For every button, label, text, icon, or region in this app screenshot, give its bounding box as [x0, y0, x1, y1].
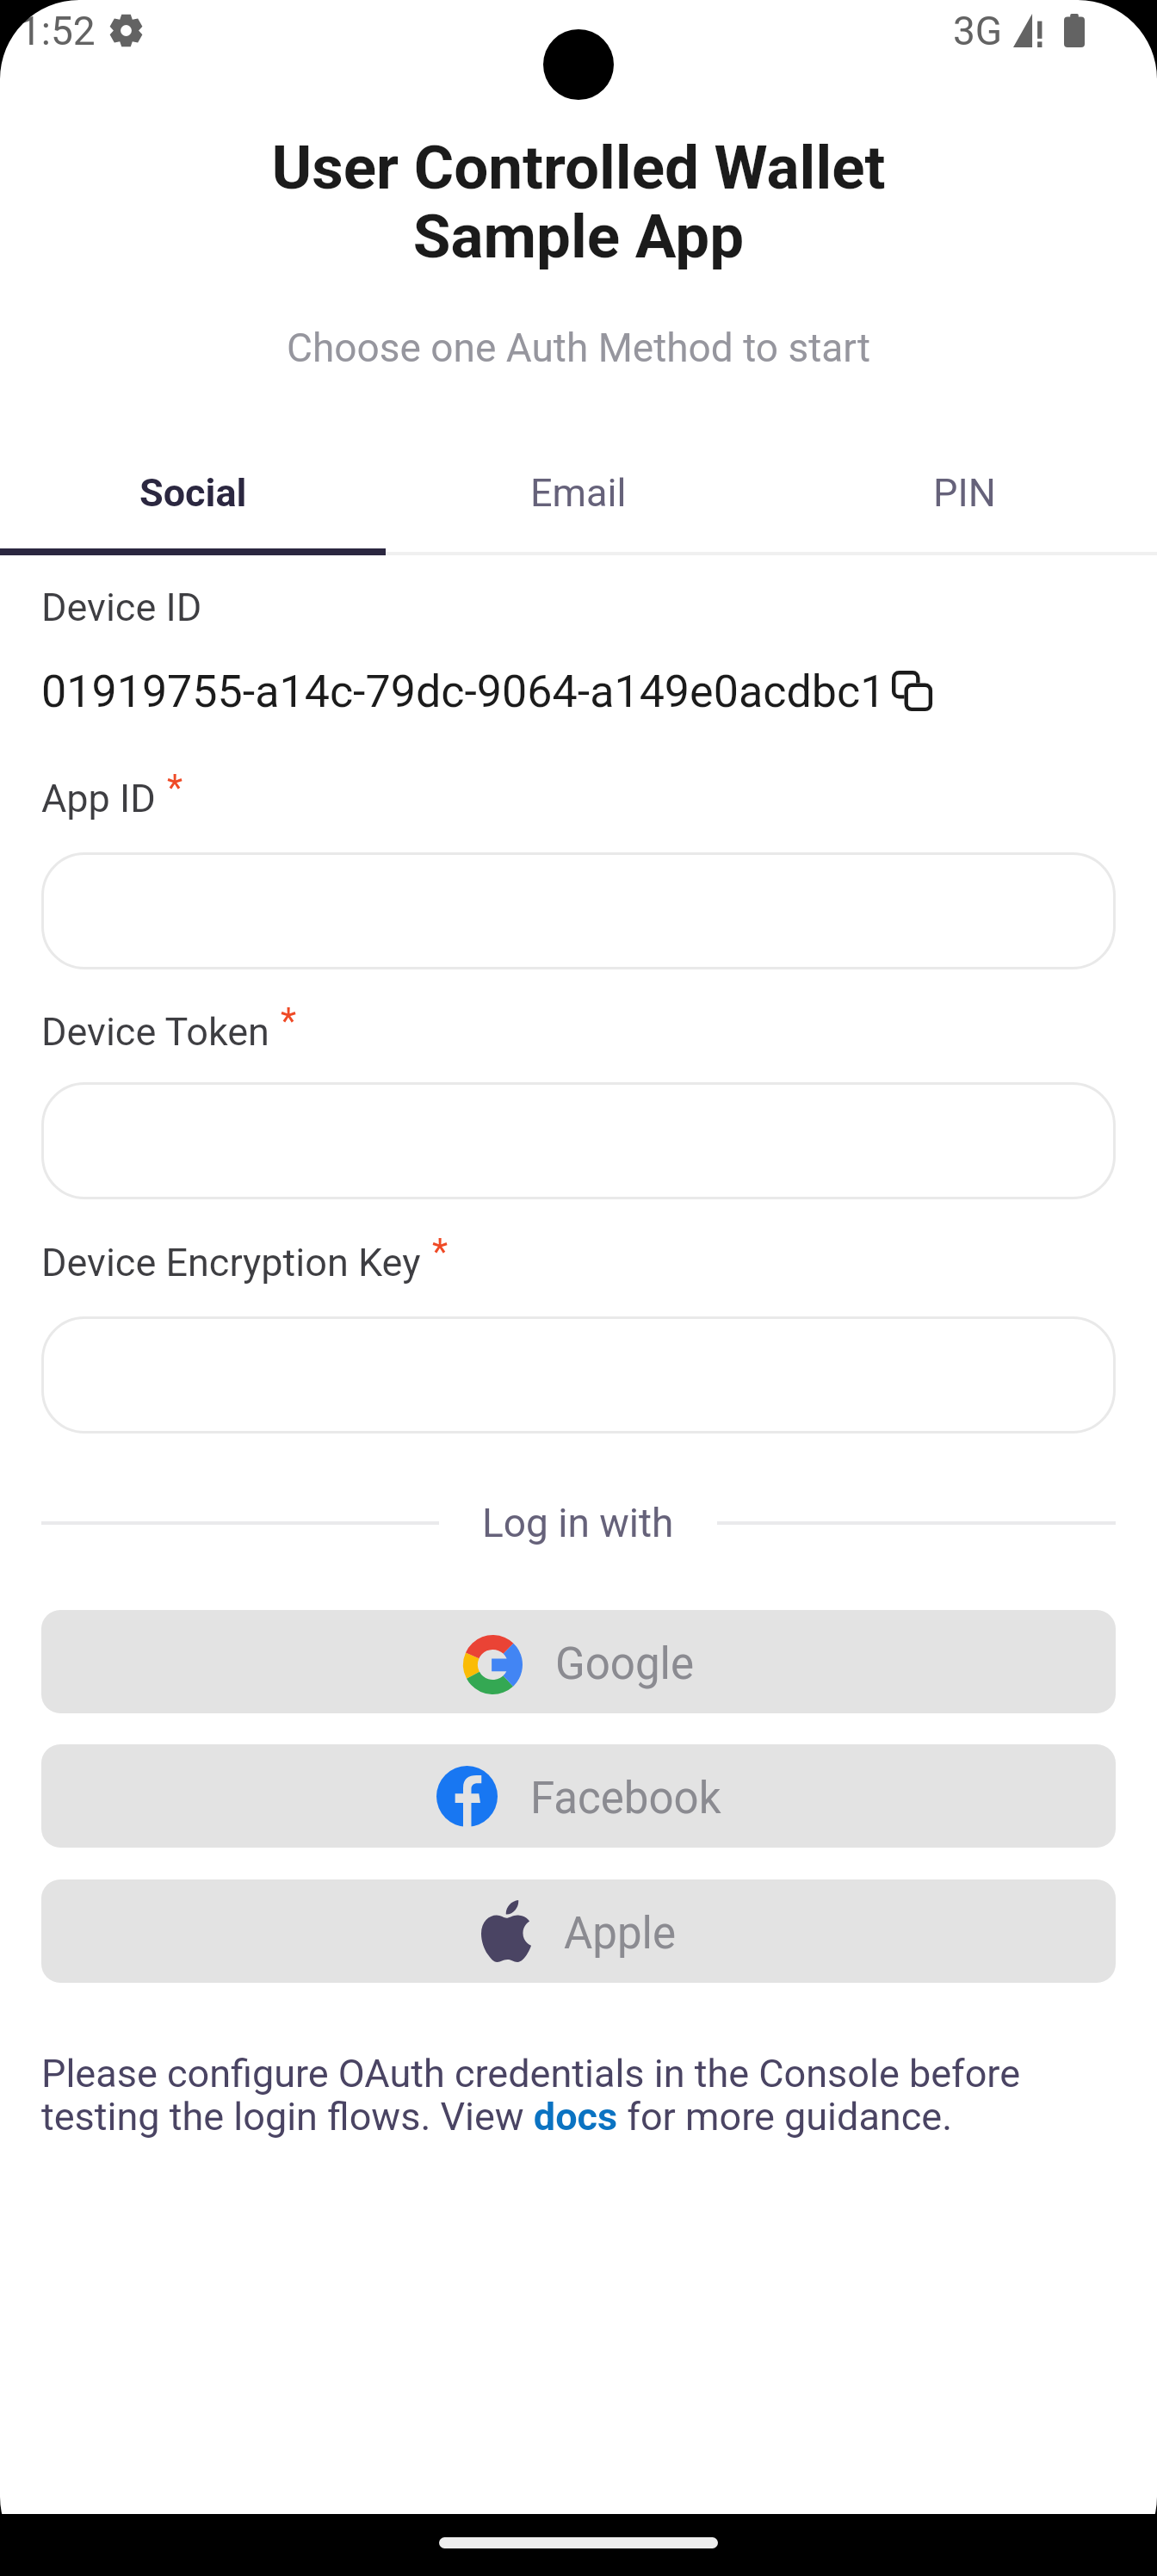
staticText: *: [281, 1000, 297, 1042]
staticText: 1:52: [19, 8, 96, 54]
staticText: User Controlled Wallet: [0, 132, 1157, 203]
staticText: 3G: [953, 8, 1003, 54]
button[interactable]: Facebook: [41, 1744, 1116, 1848]
staticText: Log in with: [482, 1500, 674, 1546]
staticText: *: [432, 1230, 449, 1273]
staticText: Facebook: [530, 1773, 721, 1824]
button[interactable]: [41, 1316, 1116, 1434]
button[interactable]: [41, 1082, 1116, 1199]
staticText: Sample App: [0, 201, 1157, 272]
staticText: 01919755-a14c-79dc-9064-a149e0acdbc1: [41, 666, 886, 718]
staticText: Choose one Auth Method to start: [0, 325, 1157, 371]
button[interactable]: Email: [386, 437, 771, 548]
staticText: Please configure OAuth credentials in th…: [41, 2051, 1116, 2139]
button[interactable]: Social: [0, 437, 386, 548]
staticText: Apple: [564, 1908, 676, 1960]
staticText: Email: [530, 470, 627, 516]
button[interactable]: [41, 852, 1116, 969]
staticText: Device Encryption Key: [41, 1240, 421, 1285]
staticText: PIN: [933, 470, 996, 516]
button[interactable]: Apple: [41, 1879, 1116, 1983]
button[interactable]: Google: [41, 1610, 1116, 1713]
staticText: App ID: [41, 776, 156, 821]
staticText: Google: [555, 1638, 694, 1690]
staticText: *: [167, 766, 183, 808]
staticText: Social: [139, 470, 247, 516]
staticText: Device ID: [41, 585, 202, 630]
staticText: Device Token: [41, 1009, 269, 1055]
button[interactable]: Copy device ID: [892, 671, 930, 709]
button[interactable]: PIN: [771, 437, 1157, 548]
